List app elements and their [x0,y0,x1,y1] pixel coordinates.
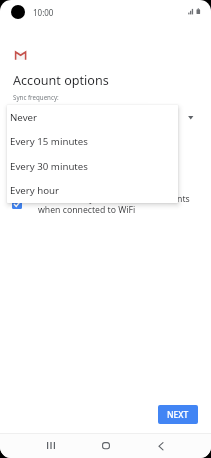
button[interactable]: Never [7,107,178,131]
button[interactable]: Automatically download attachments [12,192,192,216]
button[interactable]: Every hour [7,180,178,203]
button[interactable]: Every 30 minutes [7,156,178,180]
button[interactable]: Home [96,436,116,455]
staticText: Never [10,111,38,124]
staticText: when connected to WiFi [38,204,136,216]
button[interactable]: Recent apps [41,436,61,455]
button[interactable]: Every 15 minutes [7,131,178,155]
staticText: Automatically download attachments [38,193,190,205]
staticText: NEXT [167,409,189,421]
button[interactable]: Back [152,436,172,455]
staticText: Sync frequency: [13,93,59,101]
button[interactable]: NEXT [158,405,198,424]
staticText: Every 30 minutes [10,160,88,173]
staticText: 10:00 [33,7,54,18]
staticText: Account options [13,72,109,89]
staticText: Every 15 minutes [10,135,88,148]
staticText: Every hour [10,184,60,197]
